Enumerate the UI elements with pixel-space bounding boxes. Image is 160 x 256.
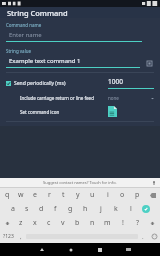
staticText: k (114, 204, 118, 214)
button[interactable]: c (42, 216, 56, 230)
button[interactable]: ? (130, 216, 145, 230)
button[interactable]: s (20, 202, 34, 216)
staticText: Suggest contact names? Touch for info. (43, 180, 117, 185)
button[interactable]: z (14, 216, 28, 230)
other: Command icon (108, 106, 117, 117)
button[interactable]: ?123 (0, 230, 16, 243)
staticText: i (107, 190, 109, 200)
button[interactable]: n (85, 216, 100, 230)
button[interactable]: Shift (0, 216, 14, 230)
staticText: . (142, 233, 144, 241)
staticText: Enter name (9, 31, 42, 39)
staticText: q (5, 190, 10, 200)
staticText: a (11, 204, 15, 214)
button[interactable]: m (100, 216, 115, 230)
button[interactable]: Delete (145, 188, 160, 202)
staticText: String Command (7, 8, 68, 18)
staticText: v (61, 218, 65, 228)
button[interactable]: Enter name (6, 31, 154, 42)
button[interactable]: j (93, 202, 108, 216)
staticText: g (68, 204, 73, 214)
button[interactable]: Send periodically (ms) (6, 77, 154, 89)
button[interactable]: a (6, 202, 20, 216)
staticText: b (75, 218, 80, 228)
button[interactable]: u (85, 188, 100, 202)
staticText: p (135, 190, 140, 200)
button[interactable]: k (108, 202, 123, 216)
staticText: Command name (6, 22, 42, 28)
staticText: z (19, 218, 23, 228)
staticText: s (25, 204, 29, 214)
button[interactable]: Set command icon (6, 106, 154, 117)
staticText: e (33, 190, 37, 200)
staticText: 1000 (108, 77, 123, 86)
staticText: ?123 (3, 233, 14, 240)
button[interactable]: Edit string value (144, 58, 154, 68)
button[interactable]: Example text command 1 (6, 57, 144, 68)
button[interactable]: Back (28, 243, 56, 256)
staticText: w (18, 190, 24, 200)
staticText: t (62, 190, 65, 200)
button[interactable]: g (63, 202, 78, 216)
staticText: d (39, 204, 44, 214)
button[interactable]: y (70, 188, 85, 202)
button[interactable]: l (123, 202, 138, 216)
staticText: Example text command 1 (9, 57, 81, 65)
button[interactable]: d (34, 202, 48, 216)
staticText: c (47, 218, 51, 228)
staticText: Include carriage return or line feed (20, 95, 108, 101)
button[interactable]: i (100, 188, 115, 202)
staticText: Send periodically (ms) (14, 80, 108, 87)
button[interactable]: Emoji (148, 230, 160, 243)
staticText: f (54, 204, 57, 214)
staticText: Set command icon (20, 109, 108, 115)
button[interactable]: Keyboard (114, 243, 143, 256)
button[interactable]: o (115, 188, 130, 202)
staticText: none (108, 95, 151, 101)
staticText: y (76, 190, 80, 200)
button[interactable]: Shift (145, 216, 160, 230)
button[interactable]: Home (56, 243, 85, 256)
button[interactable]: t (56, 188, 70, 202)
staticText: ? (136, 218, 140, 228)
button[interactable]: e (28, 188, 42, 202)
button[interactable]: ! (115, 216, 130, 230)
staticText: h (83, 204, 88, 214)
button[interactable]: b (70, 216, 85, 230)
button[interactable]: Suggest contact names? Touch for info. (0, 178, 160, 187)
button[interactable]: f (48, 202, 63, 216)
button[interactable]: p (130, 188, 145, 202)
button[interactable]: Recents (85, 243, 114, 256)
staticText: l (130, 204, 132, 214)
button[interactable]: q (0, 188, 14, 202)
staticText: ! (122, 218, 124, 228)
staticText: String value (6, 48, 32, 54)
button[interactable]: r (42, 188, 56, 202)
staticText: n (90, 218, 95, 228)
button[interactable]: Enter (138, 202, 153, 216)
button[interactable]: v (56, 216, 70, 230)
button[interactable]: . (138, 230, 148, 243)
staticText: u (90, 190, 95, 200)
staticText: , (20, 233, 22, 241)
button[interactable]: x (28, 216, 42, 230)
staticText: x (33, 218, 37, 228)
button[interactable]: Voice input (151, 180, 156, 185)
staticText: o (120, 190, 125, 200)
staticText: j (100, 204, 102, 214)
staticText: m (104, 218, 111, 228)
button[interactable]: , (16, 230, 26, 243)
button[interactable]: w (14, 188, 28, 202)
button[interactable]: Include carriage return or line feed (6, 95, 154, 101)
staticText: r (48, 190, 51, 200)
button[interactable]: h (78, 202, 93, 216)
